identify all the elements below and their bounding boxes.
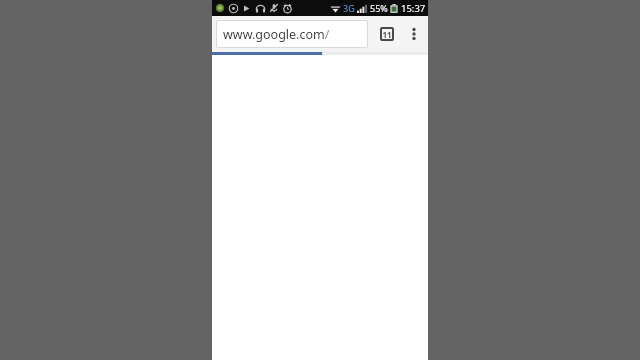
button[interactable]: Open tab switcher, 11 tabs [375,22,399,46]
staticText: 15:37 [401,2,426,15]
staticText: 3G [343,2,355,14]
button[interactable]: www.google.com/search [216,20,368,48]
staticText: 11 [382,29,392,40]
button[interactable]: More options [403,23,425,45]
staticText: 55% [370,2,388,14]
staticText: www.google.com/search [223,26,361,43]
